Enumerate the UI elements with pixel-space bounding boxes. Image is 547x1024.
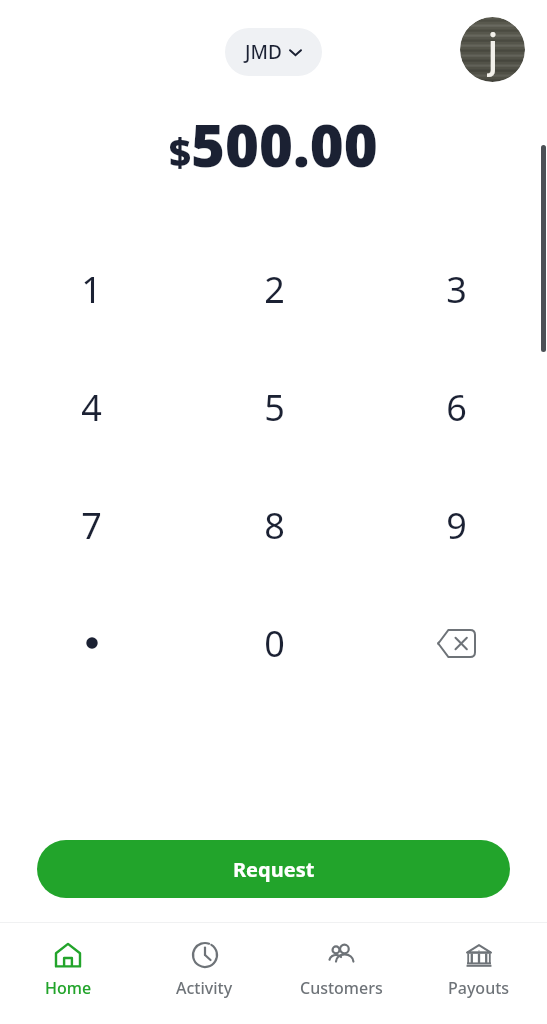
button[interactable]: 1 [0, 260, 183, 318]
button[interactable]: 5 [183, 378, 365, 436]
staticText: 7 [81, 501, 102, 550]
staticText: Payouts [448, 977, 510, 999]
button[interactable]: Customers [273, 932, 410, 1024]
staticText: Home [45, 977, 92, 999]
staticText: 4 [81, 383, 102, 432]
button[interactable]: 8 [183, 496, 365, 554]
staticText: 6 [446, 383, 467, 432]
button[interactable]: 3 [365, 260, 547, 318]
button[interactable]: 6 [365, 378, 547, 436]
staticText: j [487, 17, 499, 78]
button[interactable]: 9 [365, 496, 547, 554]
staticText: 3 [446, 265, 467, 314]
staticText: 1 [81, 265, 102, 314]
staticText: 8 [264, 501, 285, 550]
button[interactable]: 2 [183, 260, 365, 318]
staticText: 5 [264, 383, 285, 432]
staticText: 0 [264, 619, 285, 668]
staticText: Customers [300, 977, 383, 999]
button[interactable]: Request [37, 840, 510, 898]
button[interactable]: 4 [0, 378, 183, 436]
staticText: Activity [176, 977, 233, 999]
button[interactable]: Backspace [365, 614, 547, 672]
button[interactable]: 7 [0, 496, 183, 554]
button[interactable] [0, 614, 183, 672]
staticText: 9 [446, 501, 467, 550]
button[interactable]: Profile [460, 17, 525, 82]
staticText: $ [169, 126, 191, 178]
button[interactable]: Payouts [410, 932, 547, 1024]
staticText: Request [233, 856, 315, 883]
button[interactable]: JMD [225, 28, 322, 76]
button[interactable]: 0 [183, 614, 365, 672]
staticText: JMD [245, 39, 282, 65]
button[interactable]: Activity [136, 932, 273, 1024]
staticText: 500.00 [191, 105, 378, 184]
button[interactable]: Home [0, 932, 136, 1024]
staticText: 2 [264, 265, 285, 314]
